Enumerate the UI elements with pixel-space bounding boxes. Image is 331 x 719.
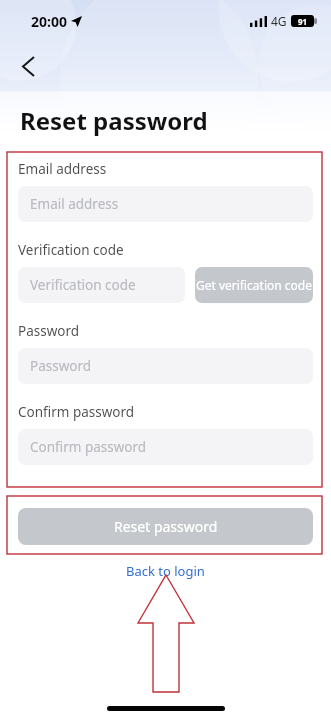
button[interactable]: Reset password <box>18 508 313 545</box>
staticText: Password <box>30 357 92 375</box>
staticText: 20:00 <box>31 12 67 31</box>
staticText: Email address <box>18 160 107 178</box>
button[interactable]: Confirm password <box>18 429 313 465</box>
staticText: Reset password <box>20 104 208 137</box>
staticText: Back to login <box>126 562 205 580</box>
staticText: Confirm password <box>30 438 147 456</box>
button[interactable]: Get verification code <box>195 267 313 303</box>
staticText: 4G <box>271 13 287 29</box>
staticText: Reset password <box>114 517 218 536</box>
staticText: Confirm password <box>18 403 135 421</box>
button[interactable]: Back to login <box>118 560 213 582</box>
button[interactable]: Back <box>12 50 44 82</box>
staticText: 91 <box>298 16 308 27</box>
button[interactable]: Verification code <box>18 267 185 303</box>
staticText: Get verification code <box>196 277 312 293</box>
staticText: Email address <box>30 195 119 213</box>
staticText: Verification code <box>18 241 124 259</box>
staticText: Password <box>18 322 80 340</box>
button[interactable]: Email address <box>18 186 313 222</box>
button[interactable]: Password <box>18 348 313 384</box>
staticText: Verification code <box>30 276 136 294</box>
